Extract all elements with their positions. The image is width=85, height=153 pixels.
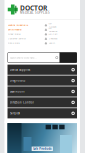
button[interactable]: Surgical [7,108,77,118]
button[interactable]: Find a store [7,41,44,45]
staticText: Log In [48,41,54,44]
staticText: Search entire store here... [10,56,37,59]
staticText: DOCTOR [20,3,47,13]
staticText: My Account [48,22,56,28]
button[interactable]: Exam Room [7,86,77,97]
staticText: Exam Room [10,90,24,93]
button[interactable]: Medical Supplies & [7,23,44,27]
staticText: Order Status [7,32,20,35]
staticText: Medical Supplies & [7,23,28,26]
button[interactable]: My Wishlist [44,27,61,32]
staticText: Infection Control [10,101,34,104]
staticText: Consumables [7,28,21,31]
staticText: Diagnostics [10,79,25,82]
staticText: Find a store [7,41,19,44]
staticText: My Wishlist [48,26,57,33]
button[interactable]: Infection Control [7,97,77,107]
staticText: Customer Service [7,37,25,40]
button[interactable]: Order Status [7,32,44,36]
staticText: Dental Supplies [10,68,30,71]
button[interactable]: Diagnostics [7,75,77,86]
button[interactable]: Checkout [44,36,61,41]
staticText: My Cart [48,32,57,35]
staticText: Checkout [48,37,57,40]
button[interactable]: Search [59,52,77,63]
button[interactable]: Customer Service [7,36,44,41]
button[interactable]: My Account [44,23,61,27]
button[interactable]: My Cart [44,32,61,36]
staticText: Lab Products [33,147,51,151]
button[interactable]: Log In [44,41,61,45]
staticText: Surgical [10,111,20,115]
button[interactable]: Dental Supplies [7,65,77,75]
button[interactable]: Consumables [7,27,44,32]
staticText: MEDICAL SUPPLIES [20,10,50,14]
